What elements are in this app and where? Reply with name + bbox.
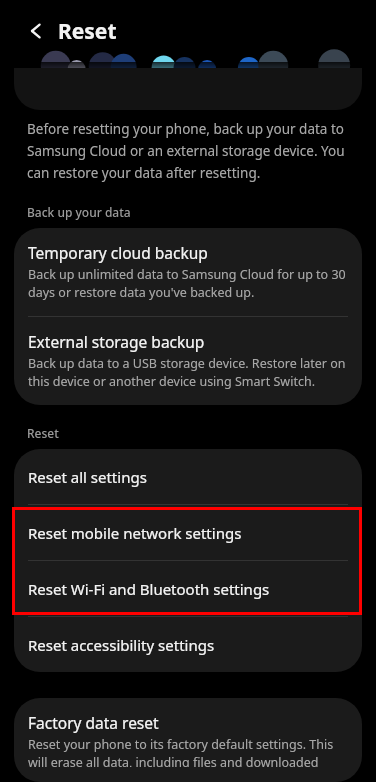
staticText: Before resetting your phone, back up you… — [27, 120, 349, 182]
staticText: Reset Wi-Fi and Bluetooth settings — [28, 579, 270, 599]
button[interactable]: Reset all settings — [14, 449, 362, 504]
staticText: Back up unlimited data to Samsung Cloud … — [28, 266, 348, 301]
staticText: Reset mobile network settings — [28, 523, 242, 543]
staticText: Back up your data — [27, 204, 131, 220]
button[interactable]: Reset mobile network settings — [14, 505, 362, 560]
staticText: Reset your phone to its factory default … — [28, 736, 348, 767]
button[interactable]: External storage backup — [14, 317, 362, 405]
staticText: Reset — [27, 425, 59, 441]
button[interactable]: Back — [18, 13, 54, 49]
button[interactable]: Temporary cloud backup — [14, 228, 362, 316]
button[interactable]: Reset Wi-Fi and Bluetooth settings — [14, 561, 362, 616]
button[interactable]: Reset accessibility settings — [14, 617, 362, 672]
staticText: Reset all settings — [28, 467, 147, 487]
staticText: Reset — [58, 17, 117, 46]
staticText: Reset accessibility settings — [28, 635, 215, 655]
staticText: Back up data to a USB storage device. Re… — [28, 355, 348, 390]
staticText: Factory data reset — [28, 712, 159, 733]
button[interactable]: Factory data reset — [14, 698, 362, 782]
staticText: Temporary cloud backup — [28, 242, 208, 263]
staticText: External storage backup — [28, 331, 205, 352]
